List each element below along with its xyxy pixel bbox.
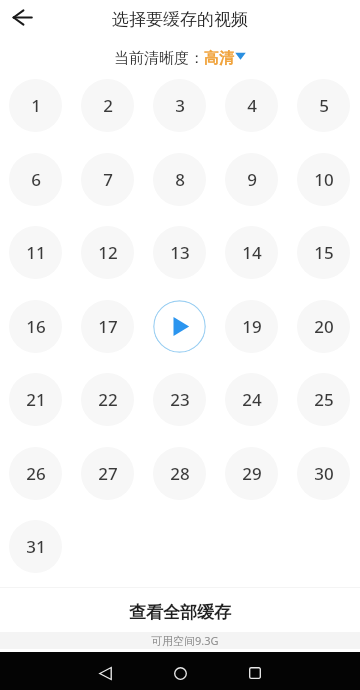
- staticText: 12: [98, 241, 118, 264]
- button[interactable]: 29: [225, 447, 278, 500]
- button[interactable]: 30: [297, 447, 350, 500]
- button[interactable]: 11: [9, 226, 62, 279]
- button[interactable]: 26: [9, 447, 62, 500]
- staticText: 5: [319, 94, 329, 117]
- staticText: 30: [314, 462, 334, 485]
- button[interactable]: 14: [225, 226, 278, 279]
- button[interactable]: 25: [297, 373, 350, 426]
- button[interactable]: 3: [153, 79, 206, 132]
- staticText: 2: [103, 94, 113, 117]
- staticText: 高清: [204, 49, 234, 68]
- button[interactable]: 2: [81, 79, 134, 132]
- staticText: 可用空间9.3G: [151, 633, 219, 648]
- staticText: 21: [26, 388, 46, 411]
- staticText: 查看全部缓存: [129, 602, 231, 623]
- button[interactable]: 13: [153, 226, 206, 279]
- staticText: 16: [26, 315, 46, 338]
- staticText: 14: [242, 241, 262, 264]
- staticText: 10: [314, 168, 334, 191]
- staticText: 25: [314, 388, 334, 411]
- button[interactable]: 1: [9, 79, 62, 132]
- staticText: 24: [242, 388, 262, 411]
- button[interactable]: Recent apps: [236, 654, 274, 690]
- staticText: 28: [170, 462, 190, 485]
- button[interactable]: 21: [9, 373, 62, 426]
- button[interactable]: 8: [153, 153, 206, 206]
- staticText: 当前清晰度：: [114, 49, 204, 68]
- staticText: 11: [26, 241, 46, 264]
- button[interactable]: 19: [225, 300, 278, 353]
- button[interactable]: 查看全部缓存: [0, 588, 360, 632]
- staticText: 13: [170, 241, 190, 264]
- button[interactable]: Back: [86, 654, 124, 690]
- staticText: 26: [26, 462, 46, 485]
- staticText: 4: [247, 94, 257, 117]
- button[interactable]: Home: [161, 654, 199, 690]
- button[interactable]: 31: [9, 520, 62, 573]
- staticText: 6: [31, 168, 41, 191]
- button[interactable]: Back: [3, 0, 41, 36]
- button[interactable]: 6: [9, 153, 62, 206]
- staticText: 23: [170, 388, 190, 411]
- staticText: 15: [314, 241, 334, 264]
- button[interactable]: 28: [153, 447, 206, 500]
- button[interactable]: 16: [9, 300, 62, 353]
- button[interactable]: 4: [225, 79, 278, 132]
- staticText: 22: [98, 388, 118, 411]
- button[interactable]: 5: [297, 79, 350, 132]
- staticText: 17: [98, 315, 118, 338]
- button[interactable]: 7: [81, 153, 134, 206]
- button[interactable]: Play episode 18: [153, 300, 206, 353]
- staticText: 20: [314, 315, 334, 338]
- staticText: 27: [98, 462, 118, 485]
- staticText: 1: [31, 94, 41, 117]
- button[interactable]: 17: [81, 300, 134, 353]
- button[interactable]: 22: [81, 373, 134, 426]
- button[interactable]: 15: [297, 226, 350, 279]
- button[interactable]: 24: [225, 373, 278, 426]
- staticText: 9: [247, 168, 257, 191]
- button[interactable]: 27: [81, 447, 134, 500]
- button[interactable]: 12: [81, 226, 134, 279]
- staticText: 29: [242, 462, 262, 485]
- button[interactable]: 9: [225, 153, 278, 206]
- button[interactable]: 23: [153, 373, 206, 426]
- staticText: 19: [242, 315, 262, 338]
- staticText: 3: [175, 94, 185, 117]
- staticText: 7: [103, 168, 113, 191]
- staticText: 31: [26, 535, 46, 558]
- staticText: 选择要缓存的视频: [112, 9, 248, 30]
- button[interactable]: 10: [297, 153, 350, 206]
- button[interactable]: 高清: [204, 49, 246, 68]
- staticText: 8: [175, 168, 185, 191]
- button[interactable]: 20: [297, 300, 350, 353]
